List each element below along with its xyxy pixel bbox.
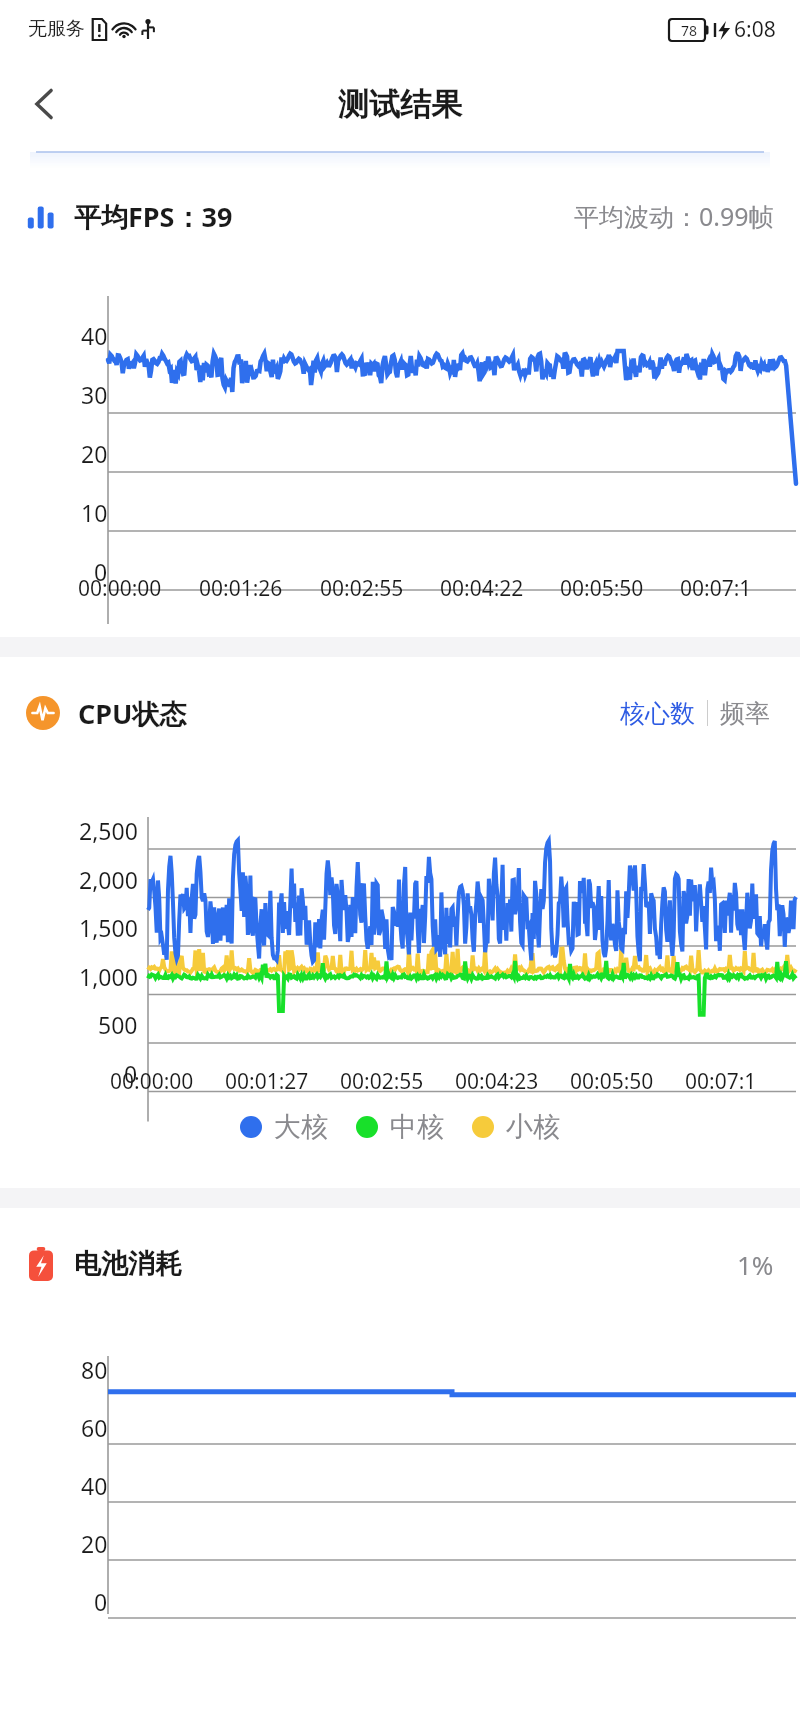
staticText: 中核: [390, 1110, 444, 1144]
staticText: 1,000: [79, 961, 138, 992]
staticText: 0: [94, 1586, 108, 1617]
staticText: 00:02:55: [340, 1067, 455, 1096]
staticText: 无服务: [28, 17, 85, 41]
button[interactable]: 电池消耗: [0, 1238, 800, 1290]
staticText: 平均FPS：39: [74, 198, 233, 235]
staticText: 00:04:23: [455, 1067, 570, 1096]
button[interactable]: 小核: [458, 1110, 574, 1144]
staticText: 2,000: [79, 864, 138, 895]
staticText: 测试结果: [338, 85, 462, 124]
button[interactable]: Back: [14, 73, 76, 135]
staticText: 40: [81, 1470, 108, 1501]
button[interactable]: 核心数: [616, 698, 699, 729]
staticText: 平均波动：0.99帧: [574, 199, 774, 233]
staticText: 1,500: [79, 912, 138, 943]
staticText: 大核: [274, 1110, 328, 1144]
button[interactable]: CPU状态: [0, 687, 800, 739]
button[interactable]: 平均FPS：39: [0, 190, 800, 242]
staticText: 10: [81, 497, 108, 528]
staticText: 60: [81, 1412, 108, 1443]
staticText: CPU状态: [78, 695, 187, 732]
button[interactable]: 中核: [342, 1110, 458, 1144]
staticText: 电池消耗: [74, 1247, 182, 1281]
staticText: 00:04:22: [440, 574, 560, 603]
staticText: 20: [81, 1528, 108, 1559]
staticText: 00:01:27: [225, 1067, 340, 1096]
staticText: 6:08: [734, 15, 776, 44]
staticText: 80: [81, 1354, 108, 1385]
staticText: 500: [98, 1009, 138, 1040]
staticText: 78: [681, 21, 698, 40]
button[interactable]: 频率: [716, 698, 774, 729]
staticText: 2,500: [79, 815, 138, 846]
staticText: 00:05:50: [560, 574, 680, 603]
staticText: 00:02:55: [320, 574, 440, 603]
staticText: 00:01:26: [199, 574, 320, 603]
staticText: 0: [94, 556, 108, 587]
staticText: 00:00:00: [78, 574, 199, 603]
staticText: 00:00:00: [110, 1067, 225, 1096]
staticText: 30: [81, 379, 108, 410]
staticText: 20: [81, 438, 108, 469]
staticText: 40: [81, 320, 108, 351]
button[interactable]: 大核: [226, 1110, 342, 1144]
staticText: 1%: [737, 1247, 774, 1282]
staticText: 小核: [506, 1110, 560, 1144]
staticText: 频率: [720, 698, 770, 729]
staticText: 00:05:50: [570, 1067, 685, 1096]
staticText: 核心数: [620, 698, 695, 729]
staticText: 0: [124, 1058, 138, 1089]
staticText: 00:07:1: [685, 1067, 800, 1096]
staticText: 00:07:1: [680, 574, 800, 603]
